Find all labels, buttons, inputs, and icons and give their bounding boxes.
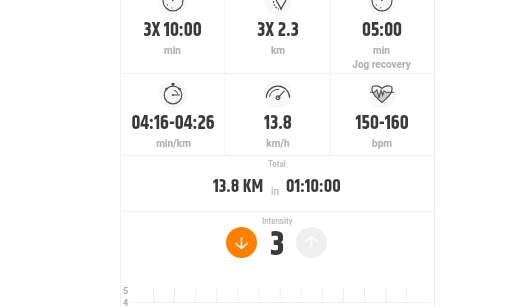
button[interactable]: 05:00 [329, 0, 434, 73]
staticText: Jog recovery [352, 59, 411, 71]
button[interactable]: 150-160 [329, 74, 434, 155]
staticText: km/h [266, 138, 290, 150]
button[interactable]: Decrease intensity [226, 227, 257, 258]
staticText: 150-160 [355, 109, 409, 138]
staticText: 13.8 [264, 109, 292, 138]
staticText: bpm [372, 138, 392, 150]
button[interactable]: Total [120, 156, 434, 211]
staticText: Total [268, 159, 286, 170]
staticText: min/km [156, 138, 191, 150]
staticText: 3 [270, 219, 285, 271]
staticText: km [271, 45, 285, 57]
button[interactable]: 04:16-04:26 [120, 74, 225, 155]
staticText: in [271, 186, 279, 198]
staticText: min [373, 45, 390, 57]
staticText: 4 [123, 298, 129, 307]
button[interactable]: 3X 2.3 [225, 0, 330, 62]
staticText: 13.8 KM [213, 173, 264, 201]
staticText: 05:00 [362, 16, 402, 45]
button[interactable]: 13.8 [225, 74, 330, 155]
staticText: 3X 2.3 [257, 16, 299, 45]
staticText: 5 [123, 286, 129, 297]
staticText: Intensity [262, 216, 293, 227]
staticText: 04:16-04:26 [131, 109, 215, 138]
staticText: 3X 10:00 [143, 16, 202, 45]
button[interactable]: 3X 10:00 [120, 0, 225, 62]
staticText: 01:10:00 [286, 173, 341, 201]
staticText: min [164, 45, 181, 57]
button[interactable]: Increase intensity [296, 227, 327, 258]
